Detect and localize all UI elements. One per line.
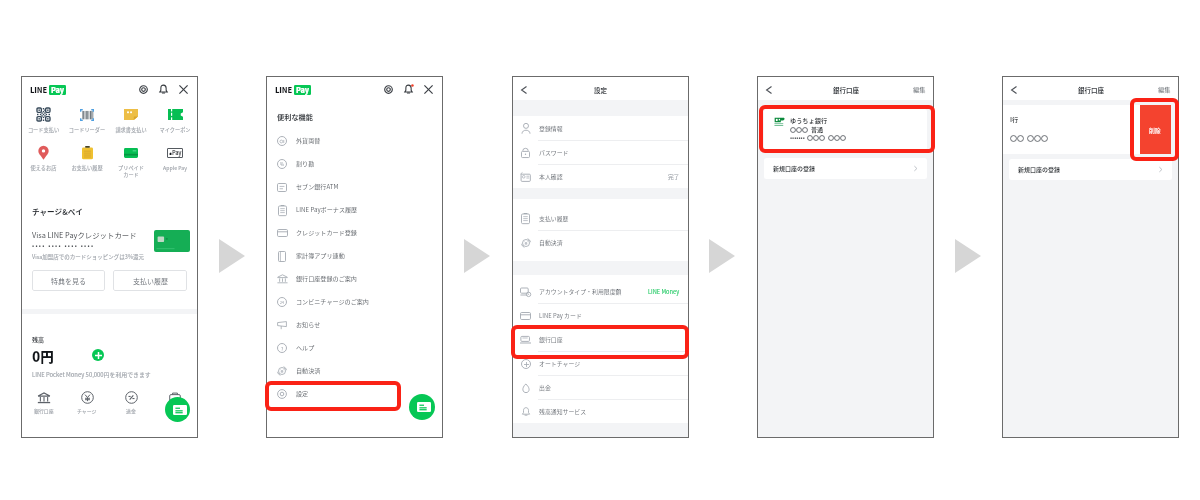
button[interactable]: LINE	[30, 84, 66, 95]
button[interactable]: 新規口座の登録	[764, 158, 927, 179]
button[interactable]: 家計簿アプリ連動	[267, 244, 442, 267]
staticText: 普通	[811, 125, 824, 134]
button[interactable]: 銀行口座	[513, 327, 688, 351]
staticText: ゆうちょ銀行	[790, 116, 828, 125]
button[interactable]: チャージ	[65, 390, 109, 414]
button[interactable]: マイカード	[409, 394, 435, 420]
staticText: 請求書支払い	[109, 126, 153, 134]
button[interactable]: ?	[267, 336, 442, 359]
button[interactable]: プリペイド カード	[109, 144, 153, 178]
staticText: お知らせ	[296, 320, 321, 329]
button[interactable]: 支払い履歴	[113, 270, 187, 291]
button[interactable]: 設定	[137, 83, 150, 96]
button[interactable]: お知らせ	[267, 313, 442, 336]
button[interactable]: I行	[1003, 105, 1140, 154]
button[interactable]: 自動決済	[513, 230, 688, 254]
button[interactable]: 新規口座の登録	[1009, 159, 1172, 180]
staticText: セブン銀行ATM	[296, 182, 339, 191]
button[interactable]: 使えるお店	[22, 144, 65, 172]
staticText: 24	[280, 300, 284, 305]
staticText: プリペイド カード	[109, 164, 153, 178]
staticText: アカウントタイプ・利用限度額	[539, 287, 648, 296]
staticText: Apple Pay	[153, 164, 197, 172]
button[interactable]: お知らせ	[157, 83, 170, 96]
button[interactable]: Pay	[153, 144, 197, 172]
button[interactable]: チャージする	[92, 349, 104, 361]
staticText: チャージ&ペイ	[32, 206, 83, 217]
staticText: Pay	[51, 85, 64, 95]
button[interactable]: 自動決済	[267, 359, 442, 382]
button[interactable]: LINE Payボーナス履歴	[267, 198, 442, 221]
button[interactable]: マイクーポン	[153, 106, 197, 134]
button[interactable]: クレジットカード登録	[267, 221, 442, 244]
button[interactable]: 削除	[1138, 105, 1171, 154]
button[interactable]: 編集	[1158, 85, 1171, 94]
button[interactable]: LINE	[275, 84, 311, 95]
staticText: •••• •••• •••• ••••	[32, 242, 95, 250]
staticText: LINE Payボーナス履歴	[296, 205, 358, 214]
staticText: 特典を見る	[51, 276, 86, 286]
staticText: 編集	[1158, 85, 1171, 94]
button[interactable]: コードリーダー	[65, 106, 109, 134]
button[interactable]: 送金	[109, 390, 153, 414]
button[interactable]: 残高通知サービス	[513, 399, 688, 423]
button[interactable]: 編集	[913, 85, 926, 94]
staticText: %	[280, 161, 285, 167]
staticText: カード	[168, 407, 183, 414]
staticText: ?	[281, 345, 284, 352]
staticText: LINE Money	[648, 287, 680, 295]
button[interactable]: アカウントタイプ・利用限度額	[513, 279, 688, 303]
button[interactable]: 特典を見る	[32, 270, 105, 291]
button[interactable]: 外貨両替	[267, 129, 442, 152]
button[interactable]: マイカード	[165, 397, 190, 422]
button[interactable]: 閉じる	[177, 83, 190, 96]
button[interactable]: 設定	[382, 83, 395, 96]
button[interactable]: 銀行口座	[22, 390, 65, 414]
button[interactable]: 24	[267, 290, 442, 313]
button[interactable]: お支払い履歴	[65, 144, 109, 172]
staticText: 支払い履歴	[539, 214, 680, 223]
button[interactable]: 戻る	[762, 83, 775, 96]
staticText: マイクーポン	[153, 126, 197, 134]
button[interactable]: ゆうちょ銀行	[764, 109, 927, 150]
button[interactable]: オートチャージ	[513, 351, 688, 375]
staticText: ヘルプ	[296, 343, 315, 352]
button[interactable]: 支払い履歴	[513, 206, 688, 230]
button[interactable]: 設定	[267, 382, 442, 405]
button[interactable]: コード支払い	[22, 106, 65, 134]
staticText: 割り勘	[296, 159, 315, 168]
staticText: LINE Pocket Money 50,000円を利用できます	[32, 370, 151, 379]
button[interactable]: 閉じる	[422, 83, 435, 96]
staticText: Visa LINE Payクレジットカード	[32, 229, 137, 240]
button[interactable]: 登録情報	[513, 116, 688, 140]
button[interactable]: お知らせ	[402, 83, 415, 96]
staticText: 削除	[1149, 126, 1161, 134]
button[interactable]: 銀行口座登録のご案内	[267, 267, 442, 290]
button[interactable]: セブン銀行ATM	[267, 175, 442, 198]
staticText: オートチャージ	[539, 359, 680, 368]
button[interactable]: カード	[153, 390, 197, 414]
staticText: 銀行口座	[1078, 85, 1104, 94]
staticText: 支払い履歴	[133, 276, 168, 286]
button[interactable]: 出金	[513, 375, 688, 399]
staticText: 残高通知サービス	[539, 407, 680, 416]
button[interactable]: LINE Pay カード	[513, 303, 688, 327]
staticText: 設定	[594, 85, 607, 94]
staticText: •••••••	[790, 134, 805, 142]
staticText: 編集	[913, 85, 926, 94]
staticText: クレジットカード登録	[296, 228, 357, 237]
staticText: 便利な機能	[277, 112, 313, 122]
staticText: 残高	[32, 335, 45, 344]
staticText: 設定	[296, 389, 309, 398]
button[interactable]: 請求書支払い	[109, 106, 153, 134]
button[interactable]: 戻る	[1007, 83, 1020, 96]
staticText: Pay	[296, 85, 309, 95]
staticText: お支払い履歴	[65, 164, 109, 172]
button[interactable]: 戻る	[517, 83, 530, 96]
button[interactable]: パスワード	[513, 140, 688, 164]
button[interactable]: %	[267, 152, 442, 175]
button[interactable]: 本人確認	[513, 164, 688, 188]
staticText: 使えるお店	[22, 164, 65, 172]
staticText: 銀行口座	[539, 335, 680, 344]
staticText: 出金	[539, 383, 680, 392]
